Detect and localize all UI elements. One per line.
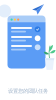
staticText: 设置您的团队任务 <box>8 88 48 94</box>
button[interactable]: 设置您的团队任务 <box>6 87 50 95</box>
